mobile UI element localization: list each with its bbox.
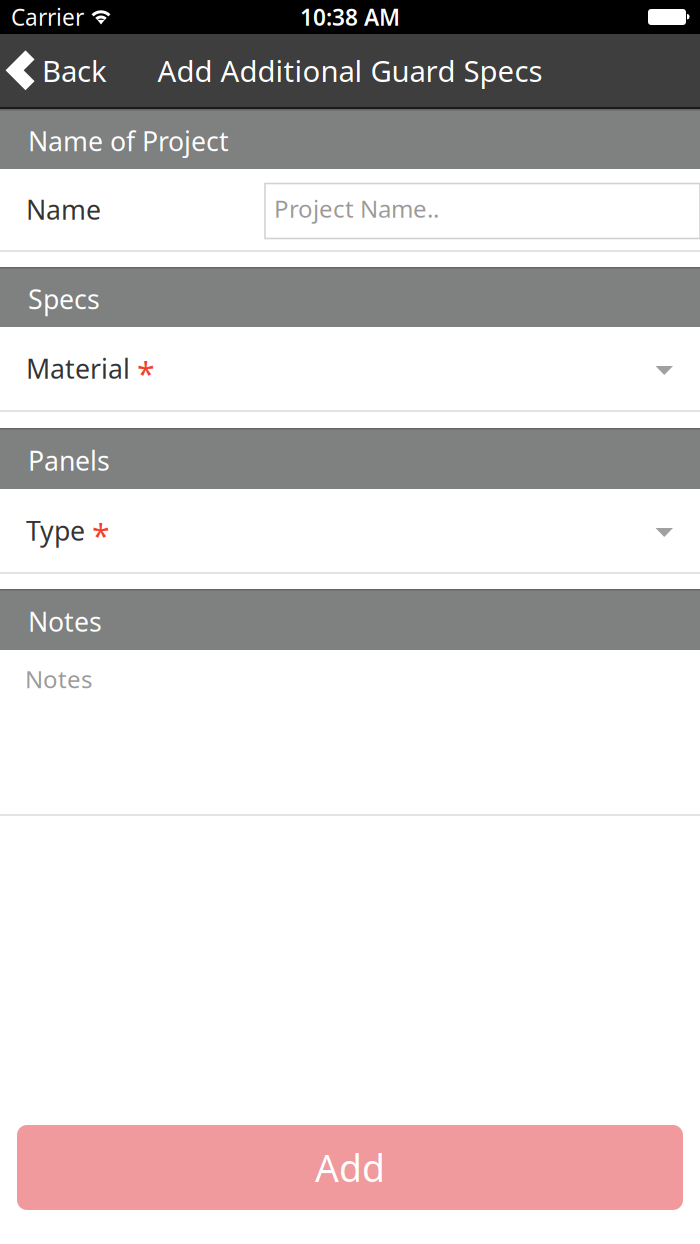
staticText: 10:38 AM [300, 2, 400, 32]
staticText: Notes [28, 604, 102, 639]
staticText: * [92, 514, 110, 557]
staticText: Name of Project [28, 123, 229, 159]
button[interactable]: Type [0, 489, 700, 572]
staticText: Panels [28, 443, 110, 478]
staticText: Add [315, 1143, 385, 1192]
staticText: Notes [25, 663, 92, 695]
staticText: Specs [28, 281, 100, 317]
staticText: Type [26, 513, 85, 548]
staticText: * [137, 352, 155, 395]
button[interactable]: Add [17, 1125, 683, 1210]
button[interactable]: Notes [0, 650, 700, 814]
staticText: Carrier [11, 2, 84, 32]
button[interactable]: Material [0, 327, 700, 410]
button[interactable]: Project Name.. [265, 180, 700, 238]
staticText: Name [26, 192, 101, 227]
button[interactable]: Back [0, 34, 119, 107]
staticText: Material [26, 351, 130, 386]
staticText: Add Additional Guard Specs [157, 51, 542, 90]
staticText: Back [42, 51, 107, 90]
staticText: Project Name.. [274, 193, 439, 224]
